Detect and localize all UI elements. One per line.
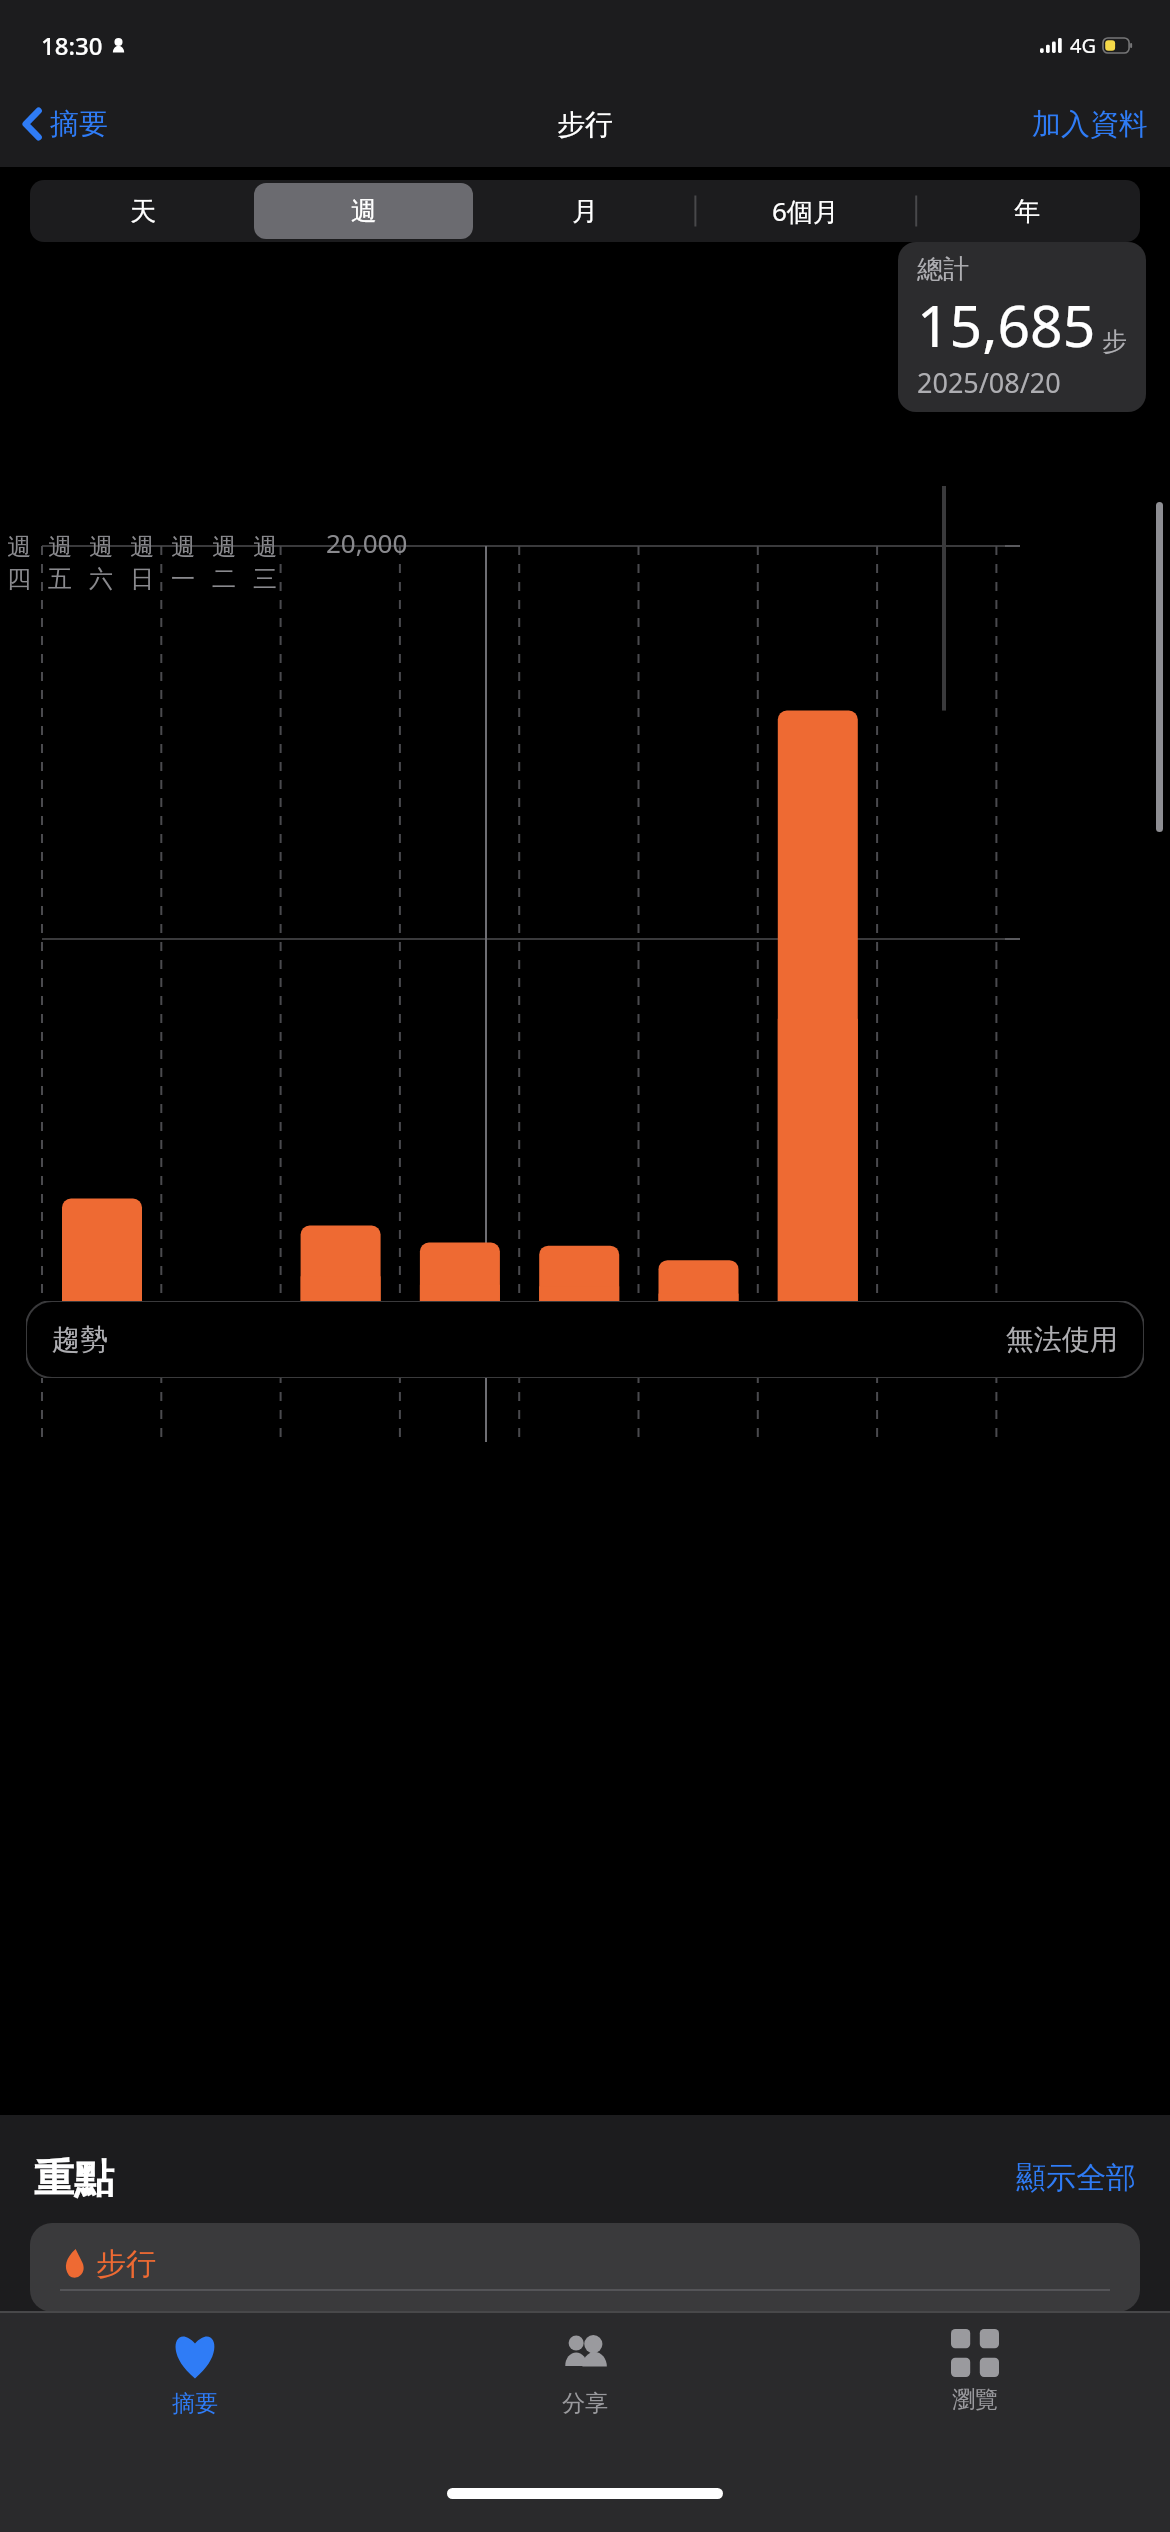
button[interactable]: 顯示全部	[1016, 2159, 1136, 2197]
button[interactable]: 週	[254, 183, 473, 239]
staticText: 重點	[34, 2153, 114, 2203]
staticText: 瀏覽	[952, 2385, 998, 2414]
staticText: 週五	[48, 532, 89, 594]
button[interactable]: 6個月	[696, 183, 915, 239]
button[interactable]: 分享	[390, 2313, 780, 2458]
button[interactable]: 月	[475, 183, 694, 239]
button[interactable]: 摘要	[0, 2313, 390, 2458]
staticText: 18:30	[41, 29, 103, 62]
staticText: 週日	[130, 532, 171, 594]
staticText: 步行	[557, 107, 613, 142]
staticText: 週六	[89, 532, 130, 594]
staticText: 分享	[562, 2389, 608, 2418]
staticText: 20,000	[326, 525, 408, 560]
staticText: 6個月	[772, 193, 839, 229]
staticText: 天	[130, 195, 156, 228]
staticText: 步行	[96, 2245, 156, 2283]
staticText: 週	[351, 195, 377, 228]
staticText: 加入資料	[1032, 106, 1148, 143]
button[interactable]: 年	[917, 183, 1136, 239]
button[interactable]: 瀏覽	[780, 2313, 1170, 2458]
button[interactable]: 摘要	[0, 81, 120, 167]
staticText: 週三	[253, 532, 294, 594]
staticText: 趨勢	[52, 1322, 108, 1357]
button[interactable]: 趨勢	[26, 1301, 1144, 1378]
button[interactable]: 天	[34, 183, 252, 239]
staticText: 4G	[1070, 32, 1096, 59]
staticText: 週一	[171, 532, 212, 594]
button[interactable]: 加入資料	[1010, 81, 1170, 167]
button[interactable]: 步行	[30, 2223, 1140, 2312]
staticText: 年	[1014, 195, 1040, 228]
staticText: 週四	[7, 532, 48, 594]
staticText: 無法使用	[1006, 1322, 1118, 1357]
staticText: 月	[572, 195, 598, 228]
staticText: 週二	[212, 532, 253, 594]
staticText: 摘要	[172, 2389, 218, 2418]
staticText: 15,685	[917, 286, 1096, 364]
staticText: 2025/08/20	[917, 364, 1061, 401]
staticText: 顯示全部	[1016, 2159, 1136, 2197]
staticText: 步	[1102, 326, 1127, 357]
staticText: 摘要	[50, 106, 108, 143]
staticText: 總計	[917, 253, 969, 286]
